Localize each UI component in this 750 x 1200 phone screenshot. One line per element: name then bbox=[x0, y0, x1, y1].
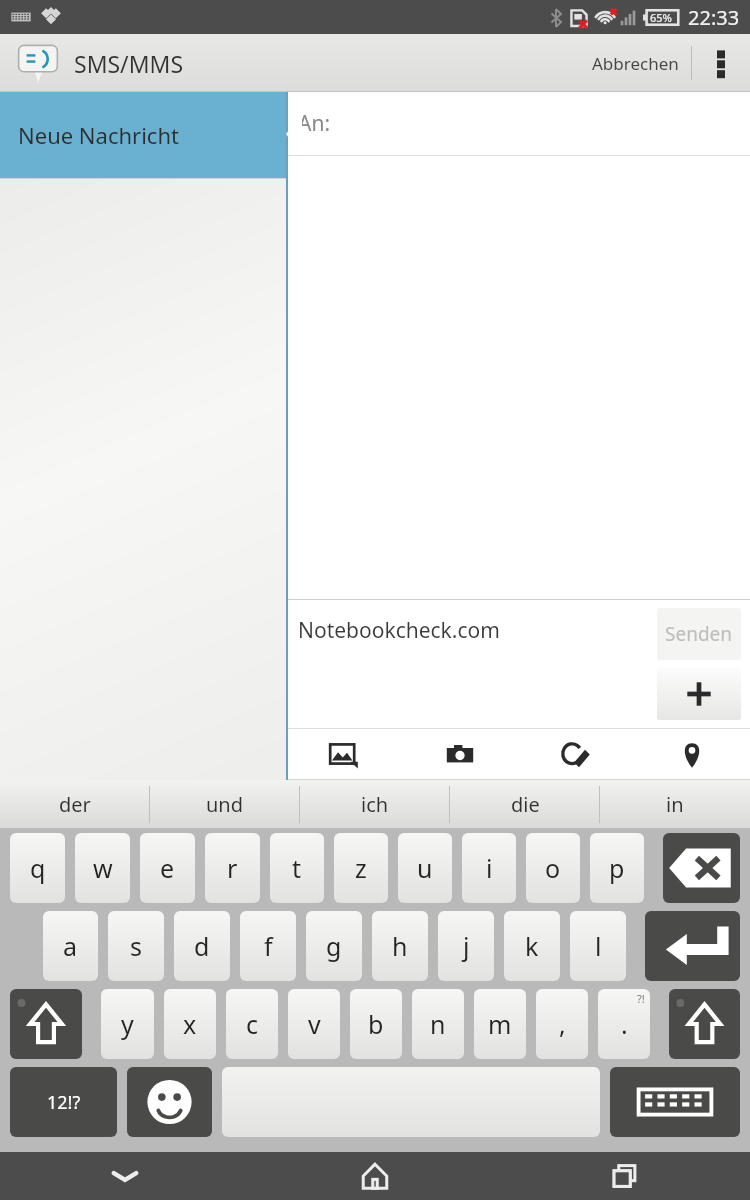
button[interactable]: ich bbox=[300, 780, 450, 828]
staticText: . bbox=[621, 1007, 628, 1041]
staticText: g bbox=[326, 929, 342, 963]
button[interactable]: u bbox=[398, 833, 452, 903]
button[interactable]: . bbox=[598, 989, 650, 1059]
staticText: Senden bbox=[665, 621, 733, 647]
staticText: Abbrechen bbox=[592, 52, 679, 75]
button[interactable]: l bbox=[570, 911, 626, 981]
staticText: o bbox=[545, 851, 561, 885]
button[interactable]: Mehr Optionen bbox=[692, 34, 750, 92]
button[interactable]: d bbox=[174, 911, 230, 981]
staticText: ?! bbox=[637, 991, 645, 1006]
button[interactable]: a bbox=[43, 911, 98, 981]
button[interactable]: Neue Nachricht bbox=[0, 92, 286, 178]
staticText: y bbox=[121, 1007, 134, 1041]
button[interactable]: y bbox=[101, 989, 154, 1059]
button[interactable]: z bbox=[334, 833, 388, 903]
button[interactable]: die bbox=[450, 780, 600, 828]
staticText: r bbox=[227, 851, 238, 885]
button[interactable]: Skizze bbox=[518, 729, 634, 779]
staticText: h bbox=[392, 929, 408, 963]
staticText: a bbox=[63, 929, 78, 963]
staticText: m bbox=[488, 1007, 512, 1041]
staticText: der bbox=[59, 791, 91, 818]
button[interactable]: Tastatur wechseln bbox=[610, 1067, 740, 1137]
button[interactable]: b bbox=[350, 989, 402, 1059]
button[interactable]: f bbox=[240, 911, 296, 981]
button[interactable]: n bbox=[412, 989, 464, 1059]
staticText: z bbox=[355, 851, 367, 885]
staticText: p bbox=[609, 851, 625, 885]
button[interactable]: o bbox=[526, 833, 580, 903]
button[interactable]: p bbox=[590, 833, 644, 903]
button[interactable]: k bbox=[504, 911, 560, 981]
button[interactable]: Senden bbox=[657, 608, 741, 660]
staticText: j bbox=[463, 929, 470, 963]
staticText: s bbox=[130, 929, 142, 963]
button[interactable]: w bbox=[75, 833, 130, 903]
button[interactable]: Emoji bbox=[127, 1067, 212, 1137]
button[interactable]: h bbox=[372, 911, 428, 981]
button[interactable]: und bbox=[150, 780, 300, 828]
staticText: t bbox=[292, 851, 302, 885]
staticText: q bbox=[30, 851, 46, 885]
button[interactable]: in bbox=[600, 780, 750, 828]
button[interactable]: r bbox=[205, 833, 260, 903]
staticText: SMS/MMS bbox=[74, 48, 184, 79]
staticText: 12!? bbox=[47, 1090, 81, 1115]
button[interactable]: g bbox=[306, 911, 362, 981]
staticText: b bbox=[368, 1007, 384, 1041]
button[interactable]: Eingabe bbox=[645, 911, 740, 981]
button[interactable]: der bbox=[0, 780, 150, 828]
button[interactable]: 12!? bbox=[10, 1067, 117, 1137]
button[interactable]: Zurück bbox=[0, 1152, 250, 1200]
staticText: Neue Nachricht bbox=[18, 120, 179, 150]
staticText: und bbox=[206, 791, 244, 818]
staticText: w bbox=[93, 851, 113, 885]
button[interactable]: Abbrechen bbox=[580, 34, 691, 92]
button[interactable]: Kamera bbox=[402, 729, 518, 779]
button[interactable]: q bbox=[10, 833, 65, 903]
staticText: n bbox=[430, 1007, 446, 1041]
button[interactable]: v bbox=[288, 989, 340, 1059]
button[interactable]: Ort bbox=[634, 729, 750, 779]
staticText: c bbox=[246, 1007, 259, 1041]
staticText: v bbox=[308, 1007, 321, 1041]
button[interactable]: Startbildschirm bbox=[250, 1152, 500, 1200]
button[interactable]: s bbox=[108, 911, 164, 981]
button[interactable]: , bbox=[536, 989, 588, 1059]
staticText: in bbox=[666, 791, 684, 818]
staticText: 65% bbox=[650, 10, 672, 25]
button[interactable]: Bild bbox=[286, 729, 402, 779]
staticText: ich bbox=[361, 791, 389, 818]
button[interactable]: Übersicht bbox=[500, 1152, 750, 1200]
staticText: 22:33 bbox=[688, 4, 740, 31]
button[interactable]: t bbox=[270, 833, 324, 903]
button[interactable]: c bbox=[226, 989, 278, 1059]
staticText: k bbox=[525, 929, 539, 963]
staticText: u bbox=[417, 851, 433, 885]
staticText: d bbox=[194, 929, 210, 963]
button[interactable]: e bbox=[140, 833, 195, 903]
staticText: x bbox=[183, 1007, 197, 1041]
button[interactable]: x bbox=[164, 989, 216, 1059]
staticText: f bbox=[264, 929, 273, 963]
staticText: Notebookcheck.com bbox=[298, 616, 500, 645]
button[interactable]: m bbox=[474, 989, 526, 1059]
staticText: die bbox=[511, 791, 540, 818]
button[interactable]: j bbox=[438, 911, 494, 981]
staticText: i bbox=[486, 851, 493, 885]
button[interactable]: i bbox=[462, 833, 516, 903]
staticText: e bbox=[160, 851, 175, 885]
staticText: l bbox=[595, 929, 602, 963]
button[interactable]: Umschalt bbox=[669, 989, 740, 1059]
button[interactable]: Leertaste bbox=[222, 1067, 600, 1137]
button[interactable]: An: bbox=[298, 109, 331, 138]
staticText: , bbox=[559, 1007, 566, 1041]
button[interactable]: Anhang hinzufügen bbox=[657, 668, 741, 720]
button[interactable]: Umschalt bbox=[10, 989, 82, 1059]
button[interactable]: Löschen bbox=[663, 833, 740, 903]
